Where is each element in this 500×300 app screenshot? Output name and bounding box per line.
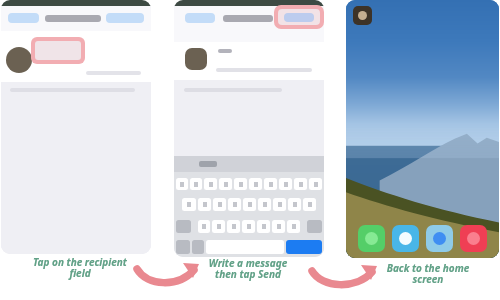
button[interactable]	[294, 178, 307, 190]
button[interactable]	[176, 178, 188, 190]
button[interactable]	[257, 220, 270, 233]
button[interactable]	[273, 198, 286, 211]
button[interactable]	[213, 198, 226, 211]
staticText: Back to the home screen	[386, 261, 470, 286]
button[interactable]	[190, 178, 202, 190]
button[interactable]	[35, 41, 81, 60]
button[interactable]: Messages	[392, 225, 419, 252]
button[interactable]: Backspace	[307, 220, 322, 233]
button[interactable]: App	[353, 6, 372, 25]
button[interactable]	[288, 198, 301, 211]
button[interactable]	[278, 9, 320, 25]
button[interactable]: Safari	[426, 225, 453, 252]
button[interactable]	[204, 178, 217, 190]
button[interactable]: Shift	[176, 220, 191, 233]
button[interactable]	[234, 178, 247, 190]
button[interactable]: Music	[460, 225, 487, 252]
button[interactable]: Emoji	[192, 240, 204, 254]
button[interactable]	[228, 198, 241, 211]
button[interactable]	[309, 178, 322, 190]
button[interactable]	[198, 220, 210, 233]
button[interactable]	[242, 220, 255, 233]
button[interactable]	[264, 178, 277, 190]
button[interactable]	[106, 13, 144, 23]
button[interactable]	[279, 178, 292, 190]
button[interactable]	[258, 198, 271, 211]
button[interactable]	[212, 220, 225, 233]
button[interactable]	[272, 220, 285, 233]
button[interactable]	[243, 198, 256, 211]
button[interactable]	[219, 178, 232, 190]
button[interactable]	[8, 13, 39, 23]
staticText: Write a message then tap Send	[199, 256, 297, 281]
button[interactable]	[249, 178, 262, 190]
button[interactable]: Numbers	[176, 240, 190, 254]
button[interactable]	[227, 220, 240, 233]
button[interactable]	[185, 13, 215, 23]
button[interactable]: Phone	[358, 225, 385, 252]
button[interactable]	[287, 220, 300, 233]
button[interactable]	[303, 198, 316, 211]
button[interactable]	[182, 198, 196, 211]
staticText: Tap on the recipient field	[31, 255, 129, 280]
button[interactable]: Return	[286, 240, 322, 254]
button[interactable]	[198, 198, 211, 211]
